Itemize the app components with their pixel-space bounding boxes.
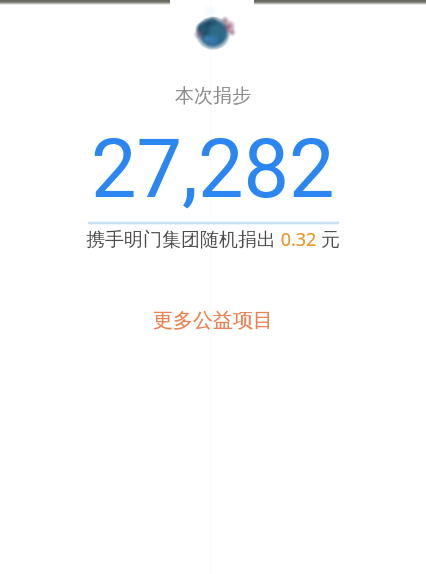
staticText: 更多公益项目 [153,308,273,333]
staticText: 本次捐步 [175,84,251,108]
staticText: 27,282 [91,122,335,217]
staticText: 携手明门集团随机捐出 0.32 元 [86,227,341,252]
button[interactable]: 更多公益项目 [141,305,285,336]
